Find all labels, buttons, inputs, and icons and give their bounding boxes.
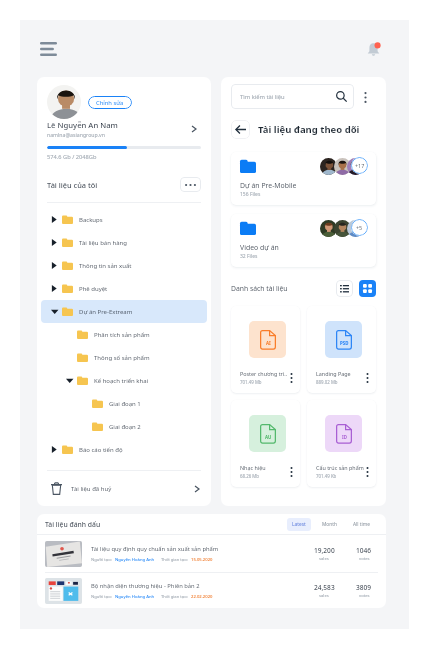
staticText: 24,583 bbox=[314, 583, 335, 592]
staticText: Phê duyệt bbox=[79, 285, 108, 293]
staticText: Tài liệu quy định quy chuẩn sản xuất sản… bbox=[91, 545, 219, 553]
button[interactable]: Grid view bbox=[359, 280, 376, 297]
staticText: 22.02.2020 bbox=[191, 594, 213, 600]
button[interactable]: File options bbox=[288, 371, 295, 384]
button[interactable]: AI bbox=[231, 306, 300, 393]
button[interactable]: Thông tin sản xuất bbox=[41, 254, 207, 277]
button[interactable]: +5 bbox=[231, 214, 376, 267]
staticText: votes bbox=[359, 593, 370, 599]
staticText: Tài liệu của tôi bbox=[47, 180, 180, 190]
staticText: Poster chương trì.. bbox=[240, 370, 288, 377]
staticText: 15.05.2020 bbox=[191, 557, 213, 563]
staticText: Landing Page bbox=[316, 370, 351, 377]
staticText: Thời gian tạo: bbox=[161, 594, 188, 600]
staticText: Tài liệu đánh dấu bbox=[45, 520, 287, 529]
staticText: Thời gian tạo: bbox=[161, 557, 188, 563]
button[interactable]: PSD bbox=[307, 306, 376, 393]
staticText: 68.26 Mb bbox=[240, 473, 260, 479]
staticText: +5 bbox=[356, 224, 363, 231]
button[interactable]: File options bbox=[288, 465, 295, 478]
button[interactable]: Thông số sản phẩm bbox=[41, 346, 207, 369]
staticText: Người tạo: bbox=[91, 557, 112, 563]
staticText: Nguyễn Hoàng Anh bbox=[115, 594, 155, 600]
staticText: 1046 bbox=[356, 546, 372, 555]
button[interactable]: All time bbox=[348, 518, 375, 531]
button[interactable]: Bộ nhận diện thương hiệu - Phiên bản 2 bbox=[37, 573, 386, 608]
button[interactable]: ID bbox=[307, 400, 376, 487]
staticText: 574.6 Gb / 2048Gb bbox=[47, 153, 97, 161]
button[interactable]: Back bbox=[231, 120, 250, 139]
button[interactable]: AU bbox=[231, 400, 300, 487]
button[interactable]: Kế hoạch triển khai bbox=[41, 369, 207, 392]
button[interactable]: Tài liệu đã huỷ bbox=[37, 471, 211, 506]
staticText: Tài liệu đang theo dõi bbox=[258, 123, 360, 136]
staticText: Báo cáo tiến độ bbox=[79, 446, 123, 454]
staticText: Giai đoạn 2 bbox=[109, 423, 141, 431]
staticText: All time bbox=[353, 521, 370, 528]
button[interactable]: File options bbox=[364, 371, 371, 384]
button[interactable]: +17 bbox=[231, 152, 376, 205]
button[interactable]: More options bbox=[180, 177, 201, 192]
staticText: votes bbox=[359, 556, 370, 562]
button[interactable]: Open profile bbox=[187, 122, 201, 136]
button[interactable]: Phân tích sản phẩm bbox=[41, 323, 207, 346]
staticText: 889.02 Mb bbox=[316, 379, 338, 385]
button[interactable]: List view bbox=[336, 280, 353, 297]
staticText: 32 Files bbox=[240, 253, 258, 260]
button[interactable]: Notifications bbox=[360, 36, 386, 62]
button[interactable]: Giai đoạn 2 bbox=[41, 415, 207, 438]
staticText: sales bbox=[319, 593, 329, 599]
button[interactable]: More bbox=[354, 86, 376, 108]
button[interactable]: Giai đoạn 1 bbox=[41, 392, 207, 415]
staticText: ID bbox=[342, 434, 347, 440]
staticText: Danh sách tài liệu bbox=[231, 284, 336, 293]
staticText: Chỉnh sửa bbox=[96, 99, 124, 107]
staticText: AU bbox=[265, 434, 272, 440]
staticText: Kế hoạch triển khai bbox=[94, 377, 149, 385]
button[interactable]: Tìm kiếm tài liệu bbox=[231, 84, 354, 109]
staticText: Thông số sản phẩm bbox=[94, 354, 150, 362]
staticText: Phân tích sản phẩm bbox=[94, 331, 150, 339]
staticText: sales bbox=[319, 556, 329, 562]
staticText: AI bbox=[266, 340, 271, 346]
staticText: +17 bbox=[355, 162, 365, 169]
staticText: Dự án Pre-Mobile bbox=[240, 181, 297, 190]
staticText: Tìm kiếm tài liệu bbox=[240, 93, 336, 101]
button[interactable]: File options bbox=[364, 465, 371, 478]
staticText: Dự án Pre-Extream bbox=[79, 308, 133, 316]
button[interactable]: Month bbox=[317, 518, 342, 531]
staticText: 701.49 Mb bbox=[240, 379, 262, 385]
staticText: Bộ nhận diện thương hiệu - Phiên bản 2 bbox=[91, 582, 200, 590]
staticText: Giai đoạn 1 bbox=[109, 400, 141, 408]
button[interactable]: Latest bbox=[287, 518, 311, 531]
button[interactable]: Tài liệu quy định quy chuẩn sản xuất sản… bbox=[37, 535, 386, 572]
staticText: Month bbox=[322, 521, 337, 528]
button[interactable]: Báo cáo tiến độ bbox=[41, 438, 207, 461]
staticText: PSD bbox=[340, 340, 349, 346]
button[interactable]: Phê duyệt bbox=[41, 277, 207, 300]
staticText: 3809 bbox=[356, 583, 372, 592]
staticText: Thông tin sản xuất bbox=[79, 262, 132, 270]
staticText: Nhạc hiệu bbox=[240, 464, 266, 471]
staticText: Tài liệu đã huỷ bbox=[71, 485, 195, 493]
staticText: Lê Nguyễn An Nam bbox=[47, 120, 118, 130]
staticText: Backups bbox=[79, 216, 103, 224]
staticText: 19,200 bbox=[314, 546, 335, 555]
staticText: Cấu trúc sản phẩm bbox=[316, 464, 364, 471]
staticText: namlna@asiangroup.vn bbox=[47, 131, 105, 138]
button[interactable]: Menu bbox=[40, 36, 66, 62]
staticText: Video dự án bbox=[240, 243, 279, 252]
staticText: Tài liệu bán hàng bbox=[79, 239, 127, 247]
button[interactable]: Tài liệu bán hàng bbox=[41, 231, 207, 254]
button[interactable]: Dự án Pre-Extream bbox=[41, 300, 207, 323]
staticText: 701.49 Kb bbox=[316, 473, 337, 479]
staticText: 156 Files bbox=[240, 191, 261, 198]
button[interactable]: Chỉnh sửa bbox=[88, 96, 132, 109]
staticText: Người tạo: bbox=[91, 594, 112, 600]
staticText: Nguyễn Hoàng Anh bbox=[115, 557, 155, 563]
staticText: Latest bbox=[292, 521, 306, 528]
button[interactable]: Backups bbox=[41, 208, 207, 231]
